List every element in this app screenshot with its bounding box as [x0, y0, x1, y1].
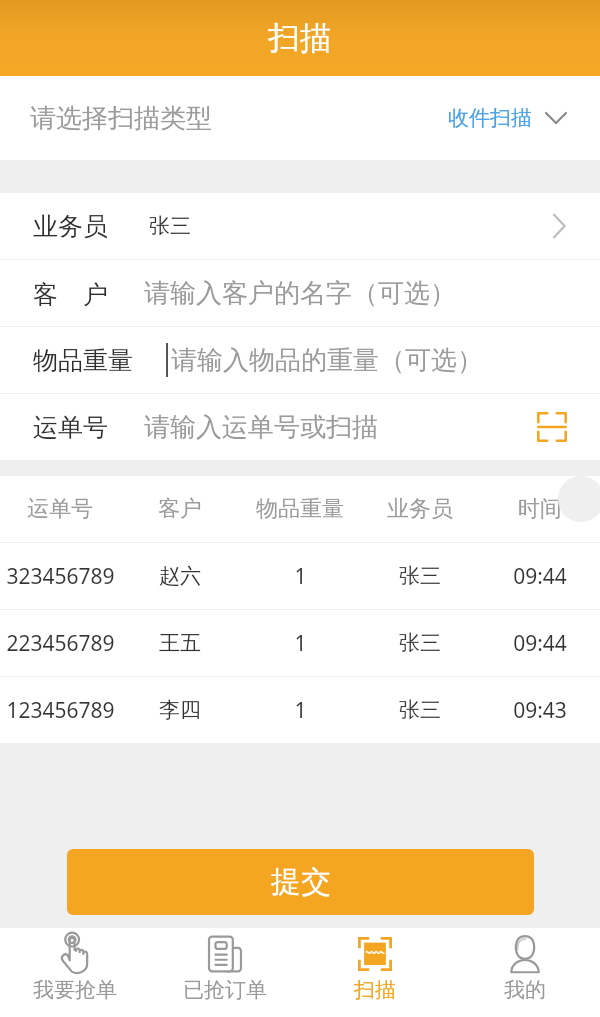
button[interactable]: 扫描运单号 — [537, 412, 567, 442]
button[interactable]: 已抢订单 — [150, 928, 300, 1017]
staticText: 请输入物品的重量（可选） — [171, 344, 483, 377]
staticText: 我要抢单 — [33, 977, 117, 1003]
staticText: 物品重量 — [33, 345, 133, 376]
staticText: 运单号 — [33, 412, 108, 443]
staticText: 请输入运单号或扫描 — [144, 411, 378, 444]
staticText: 09:44 — [513, 629, 567, 658]
button[interactable]: 业务员 — [0, 193, 600, 259]
other: 展开扫描类型 — [546, 112, 566, 124]
button[interactable]: 我要抢单 — [0, 928, 150, 1017]
staticText: 时间 — [518, 495, 562, 523]
staticText: 收件扫描 — [448, 105, 532, 131]
staticText: 客户 — [158, 495, 202, 523]
staticText: 323456789 — [6, 562, 115, 591]
button[interactable]: 我的 — [450, 928, 600, 1017]
staticText: 运单号 — [27, 495, 93, 523]
button[interactable]: 请选择扫描类型 — [0, 76, 600, 160]
staticText: 1 — [294, 562, 307, 591]
staticText: 业务员 — [387, 495, 453, 523]
staticText: 提交 — [271, 863, 331, 901]
staticText: 我的 — [504, 977, 546, 1003]
staticText: 扫描 — [268, 18, 332, 58]
staticText: 扫描 — [354, 977, 396, 1003]
staticText: 张三 — [149, 213, 191, 239]
staticText: 张三 — [399, 630, 441, 656]
staticText: 09:43 — [513, 696, 567, 725]
staticText: 1 — [294, 629, 307, 658]
staticText: 业务员 — [33, 211, 108, 242]
button[interactable]: 提交 — [67, 849, 534, 915]
staticText: 王五 — [159, 630, 201, 656]
staticText: 张三 — [399, 563, 441, 589]
button[interactable]: 客 户 — [0, 260, 600, 326]
button[interactable]: 运单号 — [0, 394, 600, 460]
button[interactable]: 扫描 — [300, 928, 450, 1017]
staticText: 客 户 — [33, 276, 108, 310]
staticText: 223456789 — [6, 629, 115, 658]
staticText: 李四 — [159, 697, 201, 723]
staticText: 赵六 — [159, 563, 201, 589]
button[interactable]: 物品重量 — [0, 327, 600, 393]
staticText: 物品重量 — [256, 495, 344, 523]
staticText: 请输入客户的名字（可选） — [144, 277, 456, 310]
staticText: 123456789 — [6, 696, 115, 725]
other: 选择业务员 — [551, 213, 567, 239]
staticText: 张三 — [399, 697, 441, 723]
staticText: 1 — [294, 696, 307, 725]
staticText: 请选择扫描类型 — [30, 102, 212, 135]
staticText: 09:44 — [513, 562, 567, 591]
staticText: 已抢订单 — [183, 977, 267, 1003]
